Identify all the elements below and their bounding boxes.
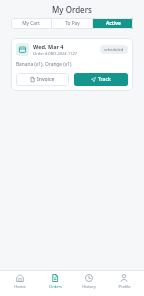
staticText: Track bbox=[98, 76, 111, 83]
button[interactable]: Profile bbox=[109, 274, 139, 296]
button[interactable]: Orders bbox=[40, 274, 70, 296]
staticText: Order #ORD-2024-1127 bbox=[33, 51, 78, 56]
button[interactable]: History bbox=[74, 274, 104, 296]
staticText: Orders bbox=[49, 284, 62, 289]
staticText: My Orders bbox=[52, 4, 92, 15]
button[interactable]: Active bbox=[93, 18, 133, 29]
button[interactable]: Wed, Mar 4 bbox=[11, 38, 133, 91]
staticText: Wed, Mar 4 bbox=[33, 43, 64, 50]
staticText: Active bbox=[106, 20, 121, 27]
button[interactable]: My Cart bbox=[11, 18, 51, 29]
staticText: To Pay bbox=[65, 20, 80, 27]
staticText: scheduled bbox=[104, 47, 124, 52]
button[interactable]: Home bbox=[5, 274, 35, 296]
button[interactable]: Track bbox=[74, 73, 128, 86]
staticText: Profile bbox=[118, 284, 131, 289]
staticText: History bbox=[82, 284, 96, 289]
staticText: My Cart bbox=[22, 20, 40, 27]
staticText: Home bbox=[14, 284, 26, 289]
button[interactable]: Invoice bbox=[16, 73, 69, 86]
button[interactable]: To Pay bbox=[52, 18, 92, 29]
staticText: Invoice bbox=[37, 76, 55, 83]
staticText: Banana (x1), Orange (x1) bbox=[16, 61, 72, 68]
